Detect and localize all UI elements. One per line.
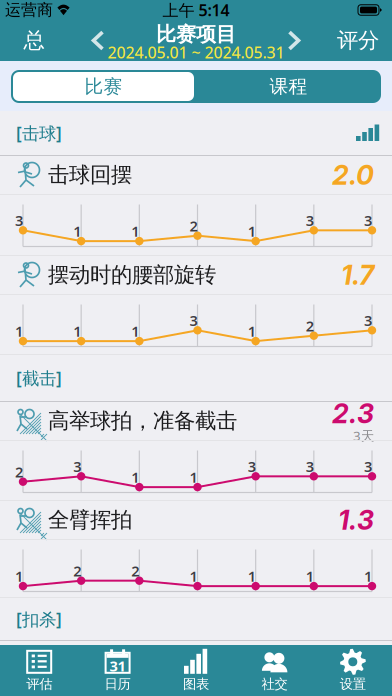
staticText: 1 [189,467,197,487]
staticText: [扣杀] [16,607,62,630]
staticText: 1.3 [338,504,374,536]
button[interactable]: 上一个时间段 [76,20,120,61]
staticText: 3天 [353,427,374,444]
staticText: 击球回摆 [48,162,132,188]
button[interactable]: 击球回摆 [0,156,392,194]
staticText: 3 [364,457,372,476]
staticText: 3 [306,211,314,230]
button[interactable]: 总 [6,20,62,61]
staticText: 日历 [105,676,131,692]
staticText: 3 [189,311,197,330]
staticText: 1 [248,566,256,586]
staticText: 3 [306,457,314,476]
staticText: 1 [15,566,23,586]
staticText: 图表 [183,676,209,692]
staticText: 高举球拍，准备截击 [48,408,237,434]
staticText: 评估 [26,676,52,692]
button[interactable]: 31 [78,645,157,696]
staticText: 比赛项目 [156,22,236,47]
staticText: [截击] [16,366,62,389]
button[interactable]: 全臂挥拍 [0,501,392,539]
button[interactable]: 设置 [314,645,392,696]
staticText: 1 [73,321,81,341]
staticText: 上午 5:14 [162,0,229,21]
staticText: 2 [73,561,81,580]
staticText: 1 [73,221,81,241]
button[interactable]: 评估 [0,645,78,696]
staticText: 1 [189,566,197,586]
staticText: 1 [131,221,139,241]
staticText: 课程 [269,75,307,98]
staticText: 1 [364,566,372,586]
staticText: 运营商 [5,0,53,20]
staticText: 1 [131,321,139,341]
staticText: 3 [15,211,23,230]
staticText: 3 [364,311,372,330]
staticText: [击球] [16,121,62,144]
button[interactable]: 比赛 [11,70,196,103]
button[interactable]: 评分 [330,20,386,61]
staticText: 1 [131,467,139,487]
staticText: 2 [15,462,23,481]
staticText: 2 [306,316,314,335]
button[interactable]: 图表 [157,645,235,696]
button[interactable]: 课程 [196,70,381,103]
button[interactable]: 下一个时间段 [272,20,316,61]
staticText: 2024.05.01 ~ 2024.05.31 [107,42,284,63]
staticText: 31 [110,656,126,676]
staticText: 1 [15,321,23,341]
staticText: 2 [189,216,197,235]
staticText: 比赛 [84,75,122,98]
staticText: 评分 [337,27,379,54]
staticText: 1 [248,221,256,241]
staticText: 3 [248,457,256,476]
staticText: 总 [23,27,44,54]
staticText: 全臂挥拍 [48,507,132,533]
staticText: 2.0 [332,159,374,191]
staticText: 社交 [261,676,287,692]
staticText: 3 [364,211,372,230]
button[interactable]: 社交 [235,645,314,696]
staticText: 摆动时的腰部旋转 [48,262,216,288]
staticText: 1.7 [341,259,374,291]
staticText: 2 [131,561,139,580]
staticText: 1 [248,321,256,341]
button[interactable]: 摆动时的腰部旋转 [0,256,392,294]
button[interactable]: 高举球拍，准备截击 [0,402,392,440]
staticText: 3 [73,457,81,476]
staticText: 1 [306,566,314,586]
staticText: 设置 [340,676,366,692]
staticText: 2.3 [332,397,374,430]
